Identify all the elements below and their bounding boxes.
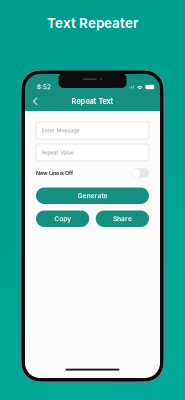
staticText: Repeat Value [41,149,73,156]
button[interactable]: Back [28,91,43,111]
staticText: New Line is Off [36,170,73,176]
staticText: Copy [54,215,71,223]
button[interactable]: Generate [36,187,149,204]
button[interactable]: Share [96,210,149,227]
button[interactable]: New Line toggle [131,167,149,178]
button[interactable]: Repeat Value [36,144,149,161]
staticText: Text Repeater [47,15,138,31]
button[interactable]: Copy [36,210,89,227]
staticText: Enter Message [41,127,79,134]
staticText: 8:52 [37,83,51,91]
staticText: Share [113,215,132,223]
staticText: Generate [77,192,107,200]
button[interactable]: Enter Message [36,122,149,139]
staticText: Repeat Text [71,97,113,106]
